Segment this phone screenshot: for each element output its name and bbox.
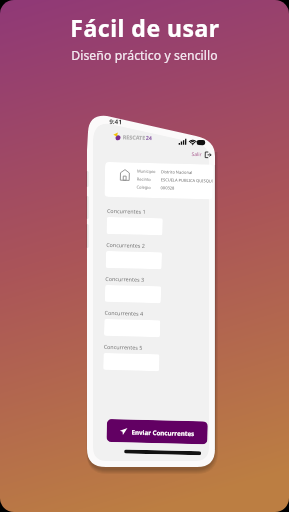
staticText: RESCATE <box>123 133 146 141</box>
other: Salir <box>204 151 211 158</box>
staticText: Recinto <box>137 177 152 182</box>
button[interactable]: Salir <box>191 151 211 158</box>
staticText: Concurrentes 3 <box>105 275 144 283</box>
staticText: Municipio <box>137 169 156 174</box>
staticText: Concurrentes 1 <box>107 207 146 215</box>
staticText: Distrito Nacional <box>161 169 193 175</box>
button[interactable] <box>104 319 160 337</box>
staticText: Enviar Concurrentes <box>131 428 195 437</box>
staticText: Concurrentes 4 <box>104 309 144 317</box>
staticText: Concurrentes 5 <box>104 343 143 351</box>
staticText: Colegio <box>136 185 152 190</box>
button[interactable] <box>105 285 161 303</box>
staticText: Diseño práctico y sencillo <box>71 47 218 64</box>
staticText: Fácil de usar <box>70 12 220 43</box>
staticText: Salir <box>191 151 202 158</box>
button[interactable]: Enviar Concurrentes <box>106 419 208 444</box>
staticText: Concurrentes 2 <box>106 241 145 249</box>
button[interactable] <box>106 251 162 269</box>
staticText: 24 <box>146 134 153 141</box>
staticText: 9:41 <box>109 117 122 126</box>
button[interactable] <box>103 353 159 371</box>
staticText: ESCUELA PUBLICA QUISQUEYA <box>161 177 213 183</box>
button[interactable] <box>106 217 163 235</box>
staticText: 000328 <box>160 185 175 190</box>
